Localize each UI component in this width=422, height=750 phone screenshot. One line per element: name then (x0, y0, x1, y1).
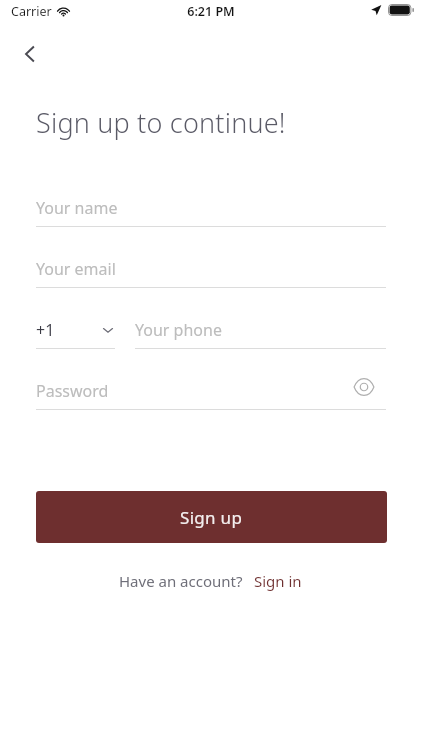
staticText: Sign in (254, 571, 302, 591)
staticText: Sign up (180, 506, 243, 529)
staticText: Carrier (11, 3, 52, 20)
staticText: Have an account? (119, 571, 243, 591)
button[interactable]: Your email (36, 251, 386, 287)
button[interactable]: Your phone (135, 312, 386, 348)
staticText: Sign up to continue! (36, 104, 286, 141)
staticText: Your email (36, 258, 116, 280)
staticText: Your phone (135, 319, 222, 341)
staticText: 6:21 PM (187, 3, 235, 20)
staticText: +1 (36, 319, 55, 341)
button[interactable]: Back (8, 32, 52, 76)
button[interactable]: Sign up (36, 491, 387, 543)
button[interactable]: Your name (36, 190, 386, 226)
staticText: Password (36, 380, 109, 402)
button[interactable]: Sign in (253, 569, 303, 593)
button[interactable]: Password (36, 373, 386, 409)
staticText: Your name (36, 197, 118, 219)
button[interactable]: Show password (349, 372, 379, 402)
button[interactable]: Select country code (36, 312, 115, 348)
